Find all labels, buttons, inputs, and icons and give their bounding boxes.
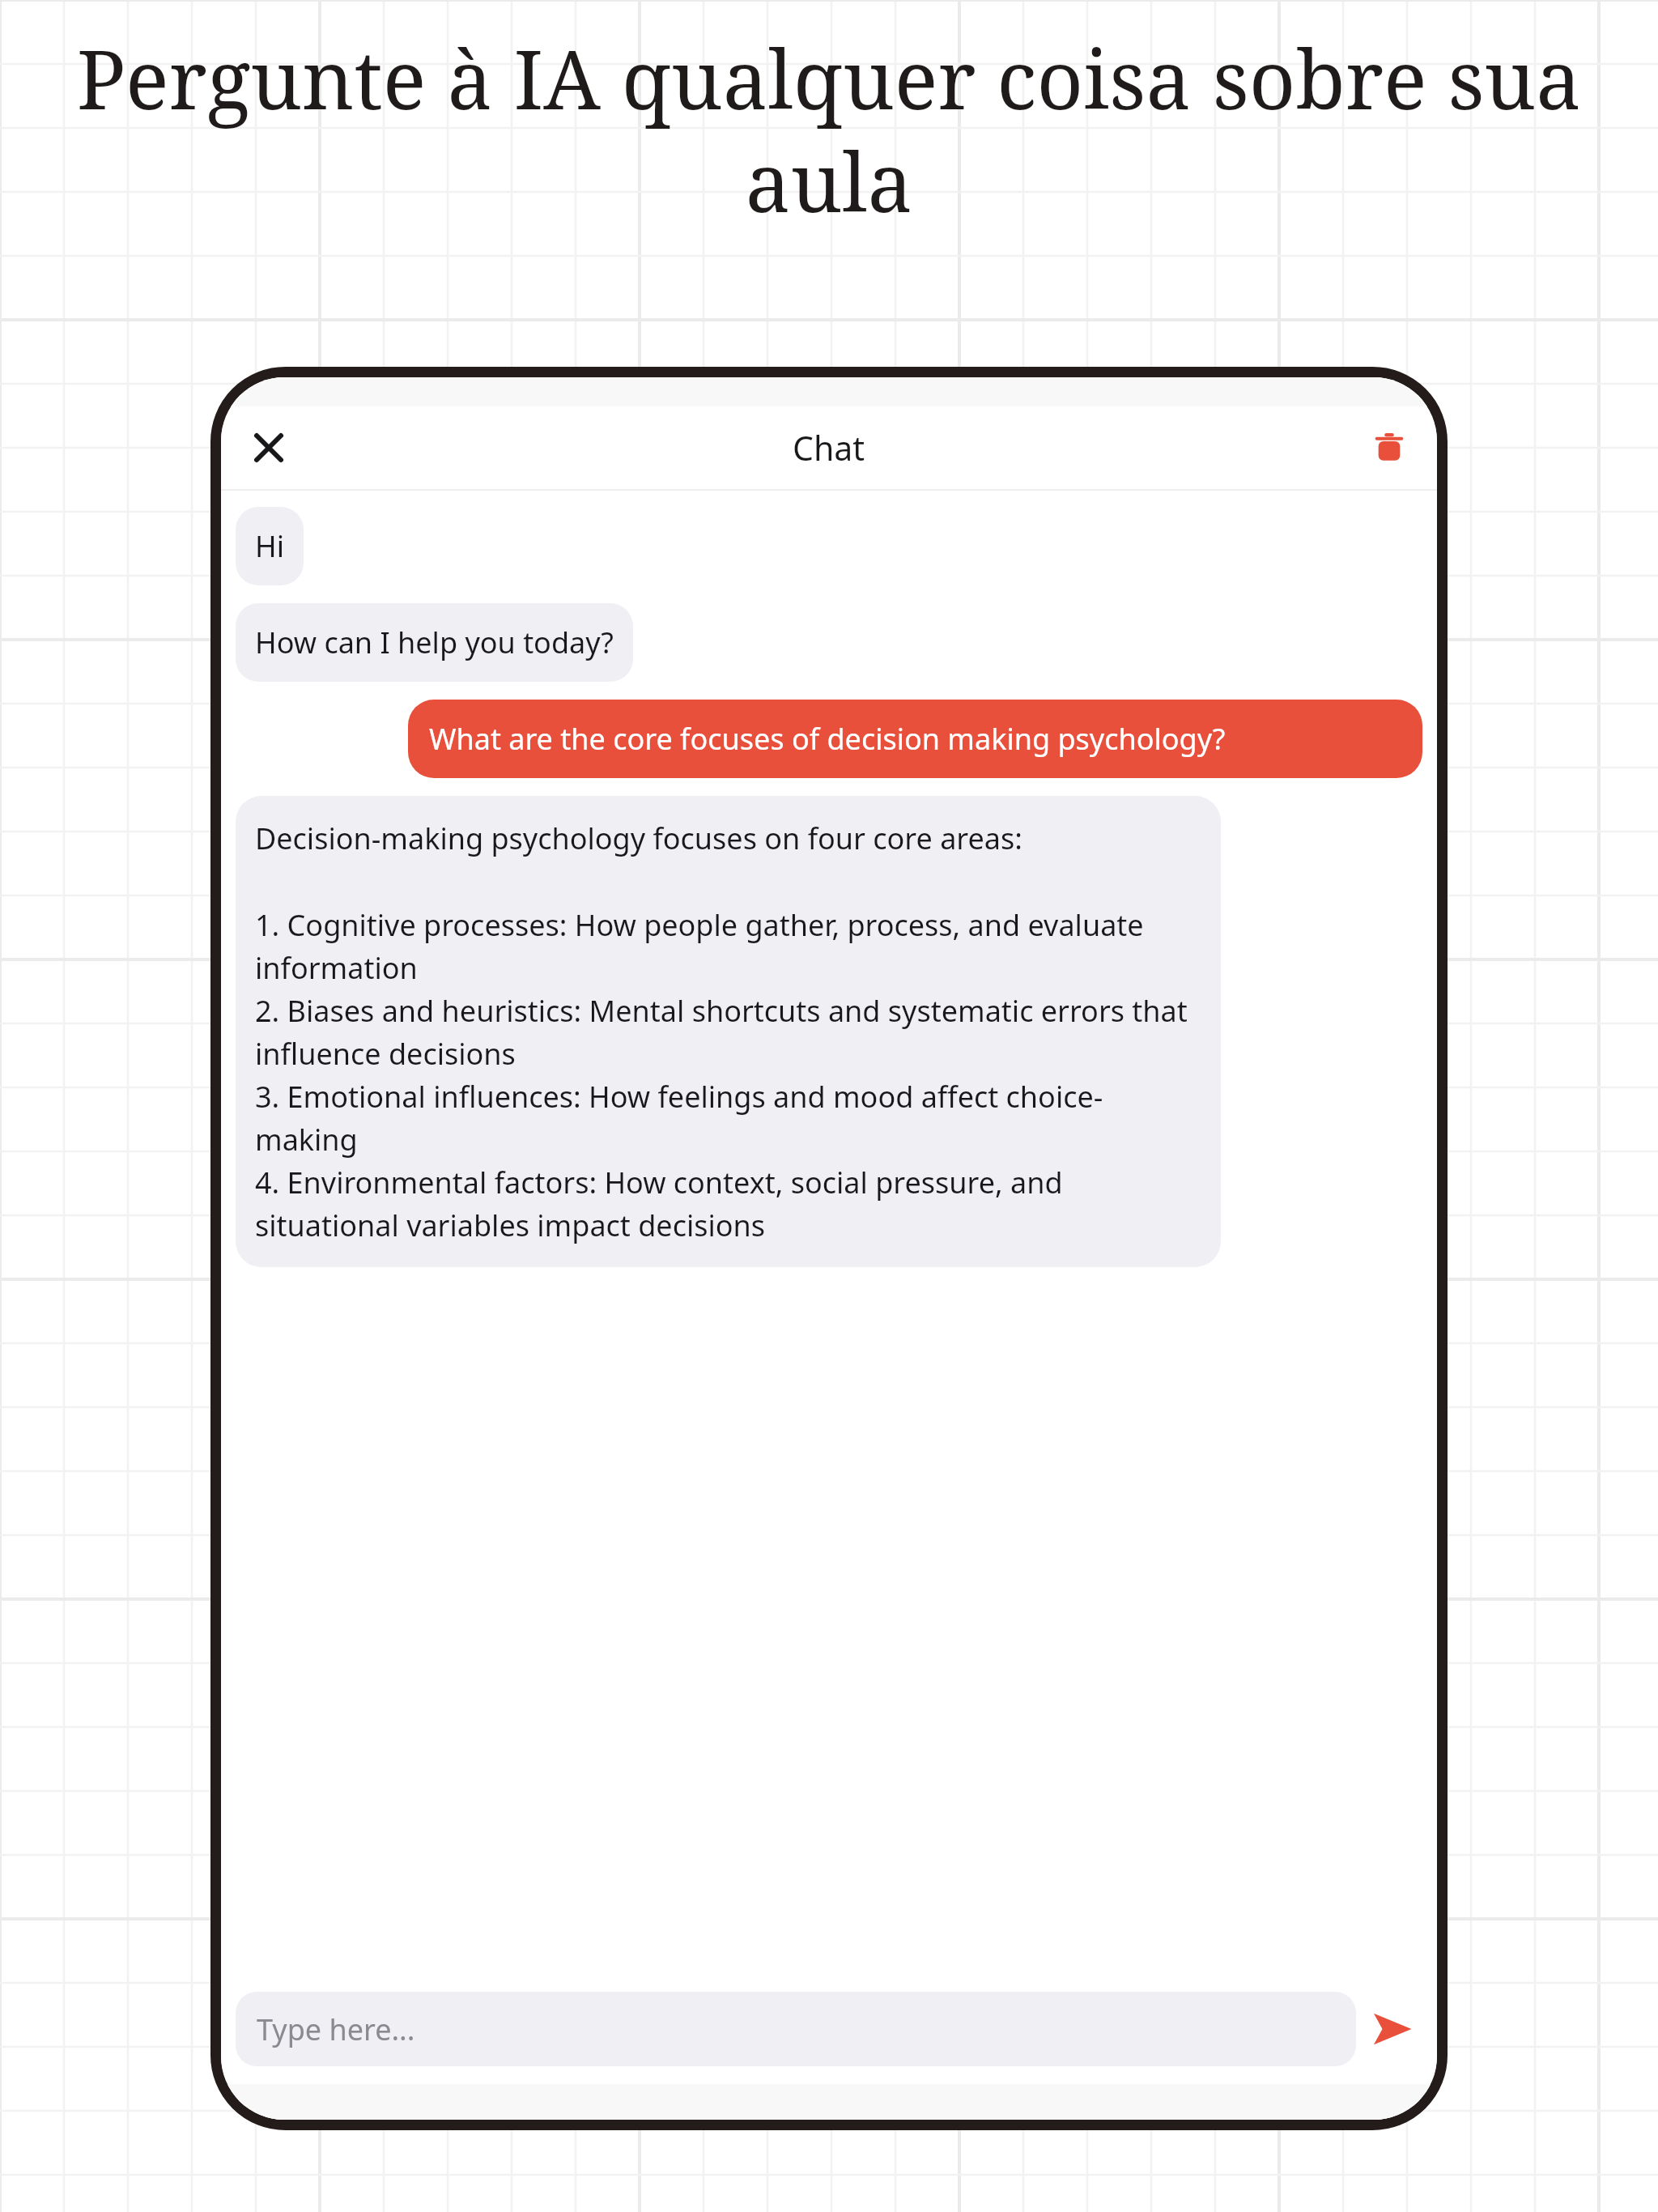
staticText: How can I help you today?: [255, 623, 614, 662]
button[interactable]: What are the core focuses of decision ma…: [408, 700, 1422, 778]
staticText: What are the core focuses of decision ma…: [429, 719, 1226, 759]
button[interactable]: Type here...: [236, 1992, 1356, 2066]
button[interactable]: Close: [237, 416, 300, 479]
staticText: Hi: [255, 526, 284, 566]
staticText: Type here...: [257, 2010, 415, 2049]
button[interactable]: How can I help you today?: [236, 603, 633, 682]
button[interactable]: Send: [1356, 1993, 1429, 2065]
button[interactable]: Hi: [236, 507, 304, 585]
staticText: Decision-making psychology focuses on fo…: [255, 819, 1201, 1244]
staticText: Pergunte à IA qualquer coisa sobre sua a…: [32, 23, 1626, 236]
button[interactable]: Decision-making psychology focuses on fo…: [236, 796, 1221, 1267]
button[interactable]: Delete conversation: [1358, 416, 1421, 479]
staticText: Chat: [793, 425, 865, 470]
